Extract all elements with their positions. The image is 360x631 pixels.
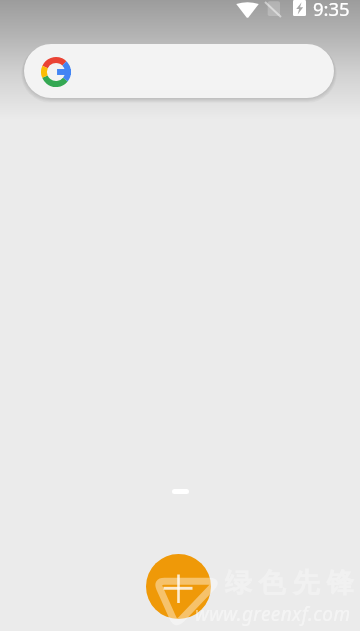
button[interactable]: Search — [24, 44, 334, 98]
other: No SIM card — [264, 0, 282, 18]
button[interactable]: App shortcut — [146, 554, 211, 619]
staticText: 9:35 — [313, 0, 350, 16]
other: Battery charging — [293, 0, 306, 16]
staticText: www.greenxf.com — [195, 601, 351, 627]
other: Wi-Fi — [236, 2, 259, 18]
